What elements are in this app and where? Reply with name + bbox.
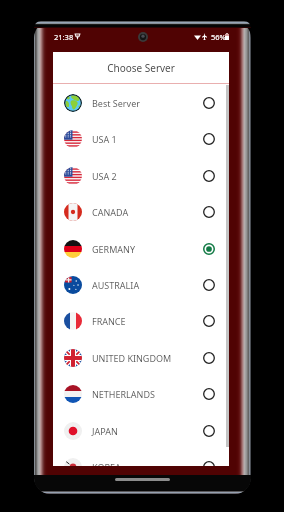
staticText: GERMANY: [92, 243, 136, 255]
other: Select server: [203, 133, 215, 145]
button[interactable]: Best Server: [53, 85, 229, 121]
staticText: USA 1: [92, 133, 117, 145]
other: Select server: [203, 170, 215, 182]
button[interactable]: NETHERLANDS: [53, 376, 229, 412]
staticText: Choose Server: [107, 61, 175, 75]
staticText: USA 2: [92, 170, 117, 182]
other: Select server: [203, 206, 215, 218]
staticText: NETHERLANDS: [92, 388, 155, 400]
button[interactable]: GERMANY: [53, 231, 229, 267]
button[interactable]: KOREA: [53, 449, 229, 466]
other: Selected server: [203, 243, 215, 255]
staticText: Best Server: [92, 97, 140, 109]
staticText: UNITED KINGDOM: [92, 352, 172, 364]
staticText: KOREA: [92, 461, 121, 466]
other: Select server: [203, 425, 215, 437]
button[interactable]: AUSTRALIA: [53, 267, 229, 303]
button[interactable]: JAPAN: [53, 413, 229, 449]
other: Select server: [203, 315, 215, 327]
staticText: 56%: [211, 32, 226, 42]
other: Select server: [203, 97, 215, 109]
button[interactable]: CANADA: [53, 194, 229, 230]
staticText: 21:38: [54, 32, 74, 42]
other: Select server: [203, 279, 215, 291]
staticText: CANADA: [92, 206, 129, 218]
button[interactable]: UNITED KINGDOM: [53, 340, 229, 376]
other: Select server: [203, 388, 215, 400]
other: Select server: [203, 352, 215, 364]
button[interactable]: USA 2: [53, 158, 229, 194]
button[interactable]: FRANCE: [53, 303, 229, 339]
staticText: FRANCE: [92, 315, 126, 327]
other: Select server: [203, 461, 215, 466]
button[interactable]: USA 1: [53, 121, 229, 157]
staticText: AUSTRALIA: [92, 279, 140, 291]
staticText: JAPAN: [92, 425, 118, 437]
